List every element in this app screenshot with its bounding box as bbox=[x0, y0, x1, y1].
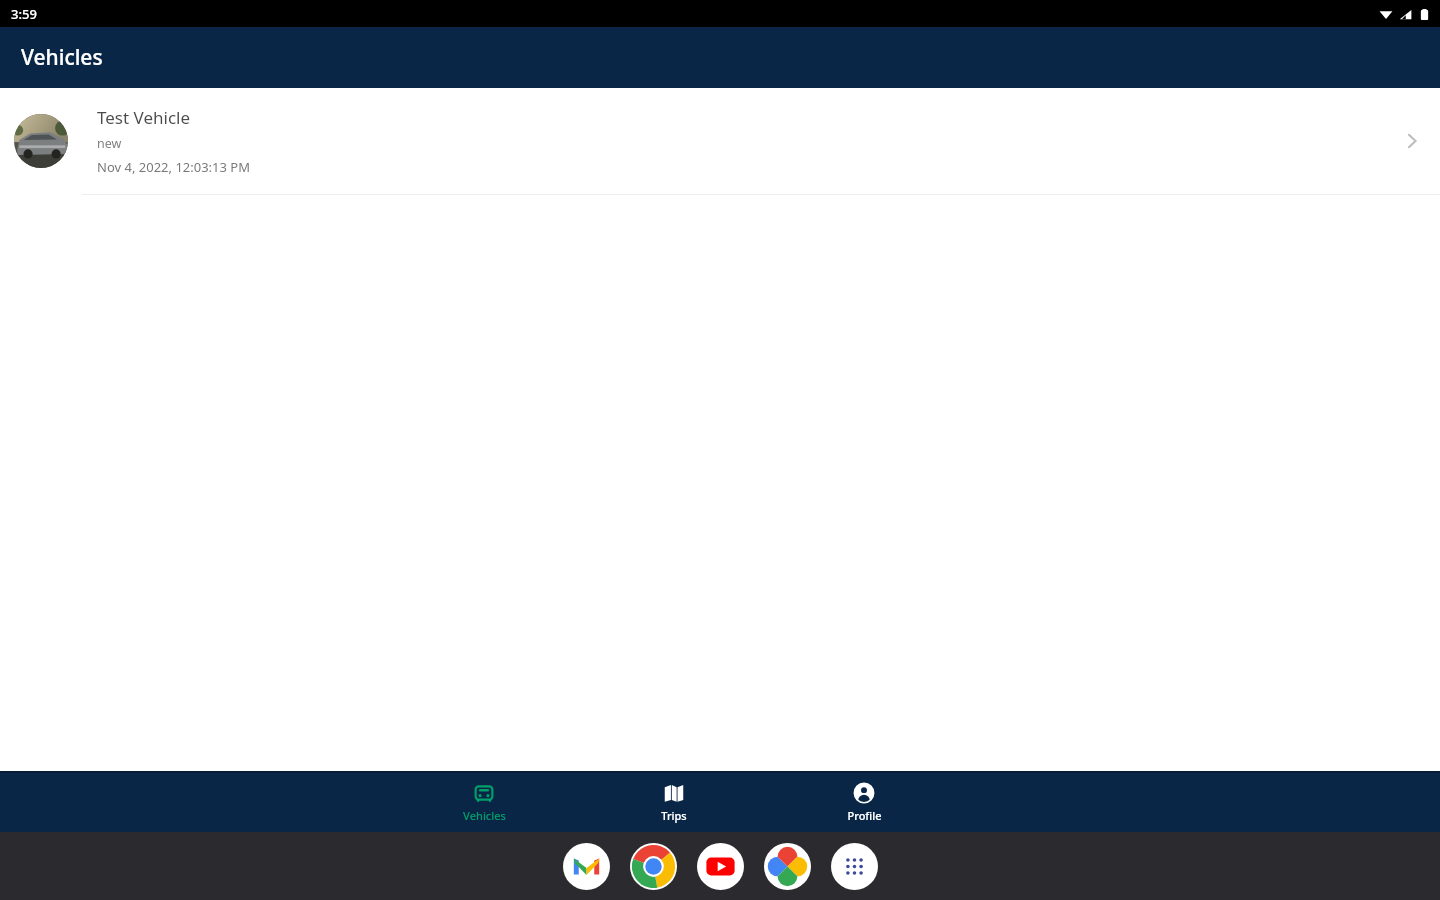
staticText: Nov 4, 2022, 12:03:13 PM bbox=[97, 158, 250, 176]
staticText: Profile bbox=[847, 808, 882, 823]
button[interactable]: Chrome bbox=[630, 843, 677, 890]
staticText: Vehicles bbox=[463, 808, 506, 823]
staticText: Trips bbox=[661, 808, 687, 823]
staticText: new bbox=[97, 135, 122, 152]
button[interactable]: Photos bbox=[764, 843, 811, 890]
button[interactable]: Trips bbox=[626, 773, 722, 832]
button[interactable]: Vehicles bbox=[436, 773, 532, 832]
button[interactable]: Gmail bbox=[563, 843, 610, 890]
button[interactable]: Profile bbox=[816, 773, 912, 832]
button[interactable]: All apps bbox=[831, 843, 878, 890]
staticText: 3:59 bbox=[11, 5, 37, 23]
staticText: Vehicles bbox=[21, 43, 103, 72]
button[interactable]: Test Vehicle bbox=[0, 88, 1440, 195]
button[interactable]: YouTube bbox=[697, 843, 744, 890]
staticText: Test Vehicle bbox=[97, 106, 191, 129]
